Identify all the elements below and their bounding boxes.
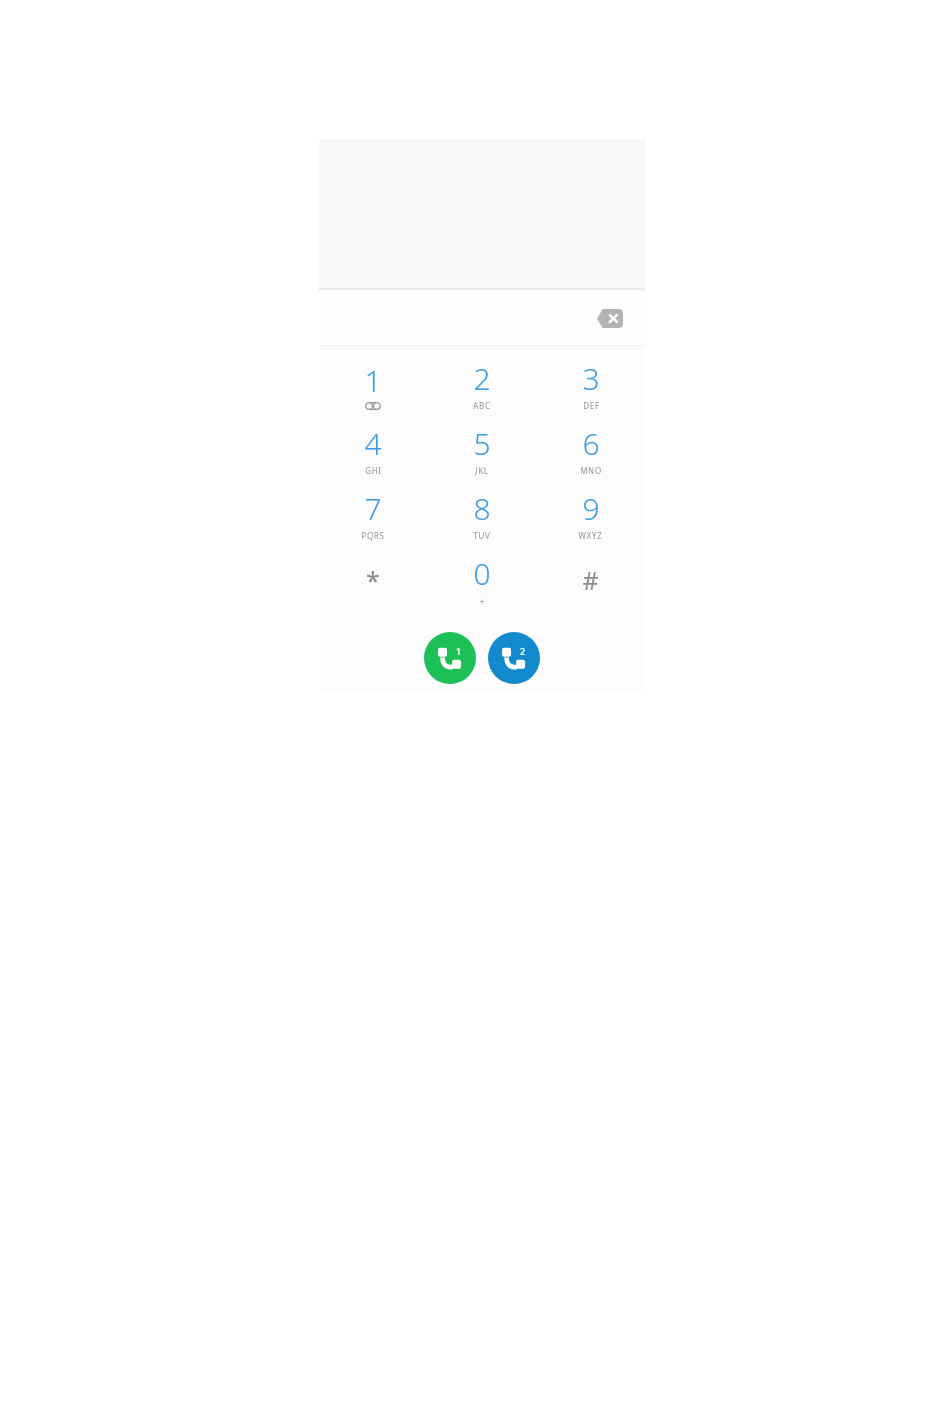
button[interactable]: 0 [427,547,536,612]
staticText: 2 [473,358,491,399]
button[interactable]: 7 [319,482,427,547]
staticText: 0 [473,553,491,594]
button[interactable]: 2 [427,352,536,417]
staticText: PQRS [361,530,385,541]
button[interactable]: 6 [536,417,645,482]
staticText: TUV [473,530,491,541]
button[interactable]: Call with SIM 2 [488,632,540,684]
staticText: * [366,563,380,597]
staticText: 3 [582,358,600,399]
staticText: 8 [473,488,491,529]
staticText: 4 [364,423,382,464]
button[interactable]: 8 [427,482,536,547]
staticText: 2 [520,645,526,657]
button[interactable]: 4 [319,417,427,482]
staticText: 7 [364,488,382,529]
staticText: 1 [456,645,462,657]
staticText: 5 [473,423,491,464]
staticText: 1 [364,360,382,401]
button[interactable]: * [319,547,427,612]
staticText: JKL [475,465,489,476]
button[interactable]: 3 [536,352,645,417]
staticText: ABC [473,400,491,411]
button[interactable]: Backspace [587,298,633,338]
staticText: DEF [583,400,600,411]
staticText: # [582,563,599,597]
staticText: GHI [365,465,382,476]
staticText: + [479,595,485,607]
staticText: 6 [582,423,600,464]
button[interactable]: 5 [427,417,536,482]
staticText: 9 [582,488,600,529]
button[interactable]: 1 [319,352,427,417]
button[interactable]: Call with SIM 1 [424,632,476,684]
button[interactable]: 9 [536,482,645,547]
staticText: WXYZ [578,530,603,541]
staticText: MNO [580,465,602,476]
button[interactable]: # [536,547,645,612]
